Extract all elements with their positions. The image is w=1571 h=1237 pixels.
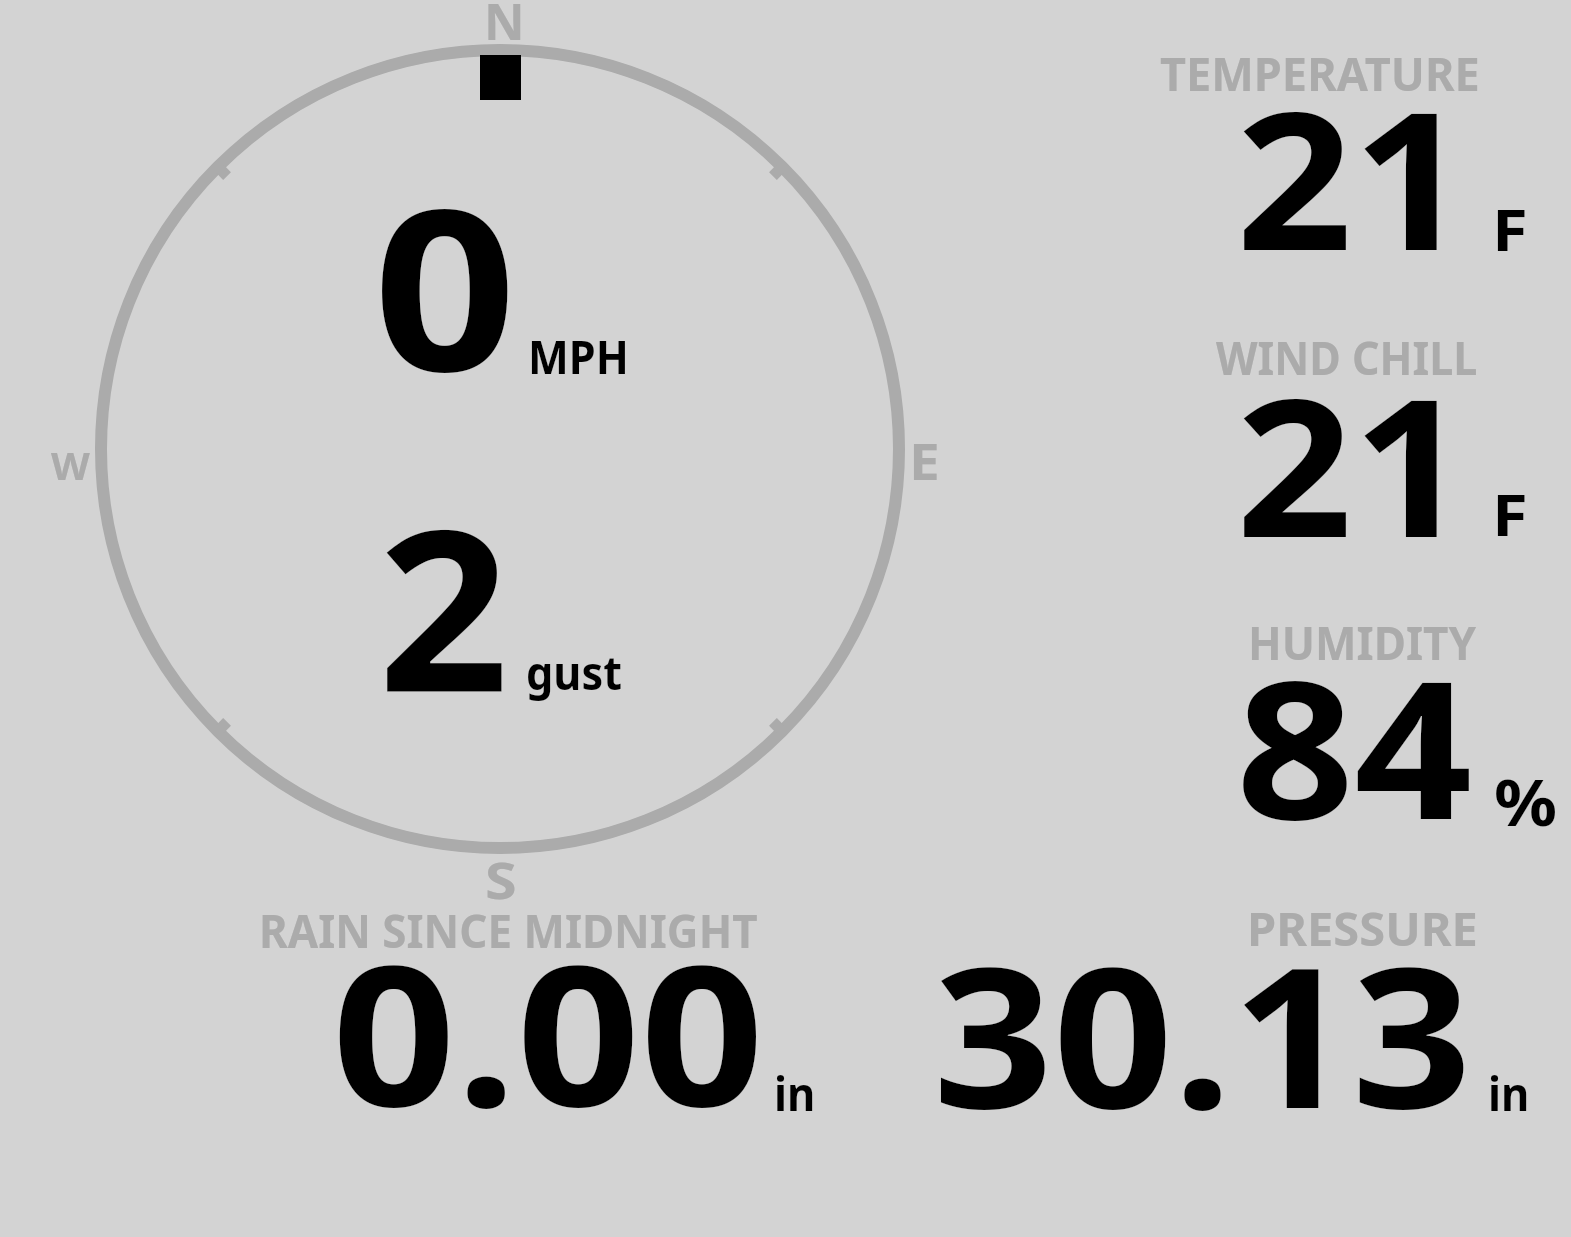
staticText: N [484, 0, 525, 55]
staticText: RAIN SINCE MIDNIGHT [259, 898, 758, 962]
staticText: PRESSURE [1247, 896, 1478, 960]
staticText: gust [526, 640, 623, 704]
button[interactable]: Pressure 30.13 inches [900, 890, 1571, 1135]
staticText: 30.13 [933, 901, 1472, 1146]
button[interactable]: Rain since midnight 0.00 inches [240, 890, 840, 1135]
button[interactable]: Humidity 84 percent [1140, 610, 1571, 875]
staticText: F [1492, 189, 1528, 268]
staticText: in [1488, 1062, 1530, 1125]
staticText: 2 [378, 453, 509, 757]
staticText: % [1494, 758, 1557, 845]
button[interactable]: Wind 0 miles per hour, gusting 2, from t… [0, 0, 960, 920]
staticText: E [909, 427, 940, 495]
staticText: MPH [528, 324, 629, 388]
staticText: S [485, 846, 517, 914]
staticText: in [774, 1062, 816, 1125]
staticText: W [51, 440, 91, 491]
staticText: 0 [373, 133, 517, 437]
staticText: WIND CHILL [1216, 325, 1478, 389]
staticText: HUMIDITY [1248, 610, 1477, 674]
staticText: F [1492, 474, 1528, 553]
staticText: 21 [1236, 47, 1470, 306]
button[interactable]: Temperature 21 degrees Fahrenheit [1140, 40, 1571, 305]
staticText: TEMPERATURE [1160, 41, 1481, 105]
staticText: 84 [1236, 616, 1473, 875]
staticText: 0.00 [332, 899, 765, 1144]
button[interactable]: Wind chill 21 degrees Fahrenheit [1140, 325, 1571, 590]
staticText: 21 [1236, 334, 1470, 593]
